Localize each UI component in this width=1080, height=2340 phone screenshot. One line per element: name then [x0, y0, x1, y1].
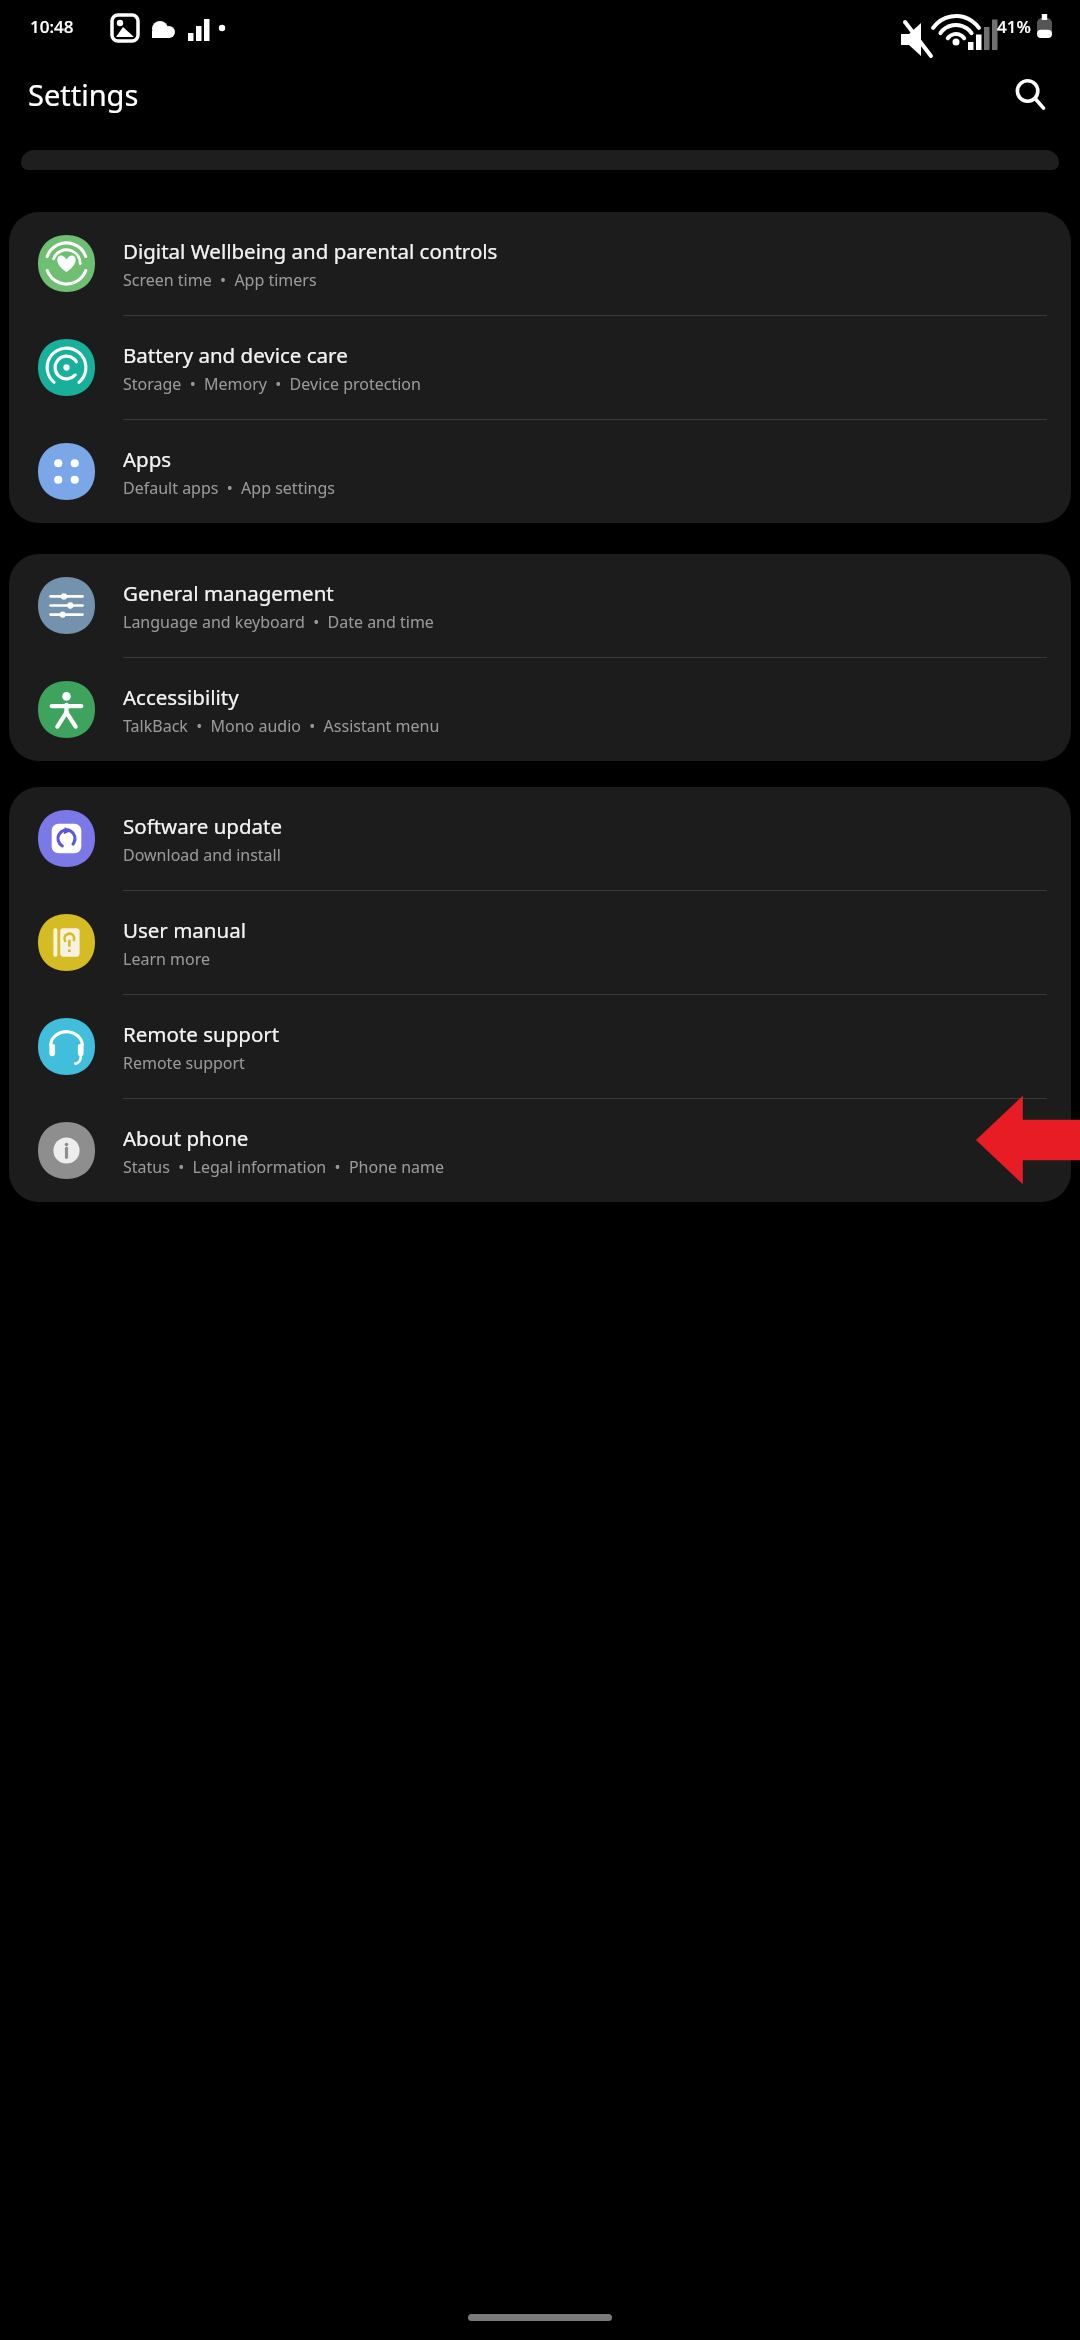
staticText: General management — [123, 579, 334, 607]
button[interactable]: Search — [1008, 72, 1052, 116]
staticText: Remote support — [123, 1020, 280, 1048]
staticText: Battery and device care — [123, 341, 348, 369]
staticText: Language and keyboard • Date and time — [123, 611, 434, 633]
button[interactable]: User manual — [9, 891, 1071, 995]
button[interactable]: Digital Wellbeing and parental controls — [9, 212, 1071, 316]
staticText: Apps — [123, 445, 172, 473]
staticText: Settings — [28, 75, 139, 114]
button[interactable]: Software update — [9, 787, 1071, 891]
staticText: Screen time • App timers — [123, 269, 317, 291]
staticText: 10:48 — [30, 15, 74, 38]
button[interactable]: Battery and device care — [9, 316, 1071, 420]
staticText: Default apps • App settings — [123, 477, 335, 499]
button[interactable]: General management — [9, 554, 1071, 658]
staticText: Storage • Memory • Device protection — [123, 373, 421, 395]
button[interactable]: Remote support — [9, 995, 1071, 1099]
staticText: 41% — [997, 15, 1031, 38]
staticText: Software update — [123, 812, 283, 840]
staticText: User manual — [123, 916, 246, 944]
staticText: Download and install — [123, 844, 281, 866]
staticText: TalkBack • Mono audio • Assistant menu — [123, 715, 440, 737]
staticText: Remote support — [123, 1052, 245, 1074]
staticText: About phone — [123, 1124, 249, 1152]
staticText: Accessibility — [123, 683, 239, 711]
button[interactable]: About phone — [9, 1099, 1071, 1202]
staticText: Status • Legal information • Phone name — [123, 1156, 445, 1178]
staticText: Learn more — [123, 948, 210, 970]
button[interactable]: Apps — [9, 420, 1071, 523]
staticText: Digital Wellbeing and parental controls — [123, 237, 498, 265]
button[interactable]: Accessibility — [9, 658, 1071, 761]
